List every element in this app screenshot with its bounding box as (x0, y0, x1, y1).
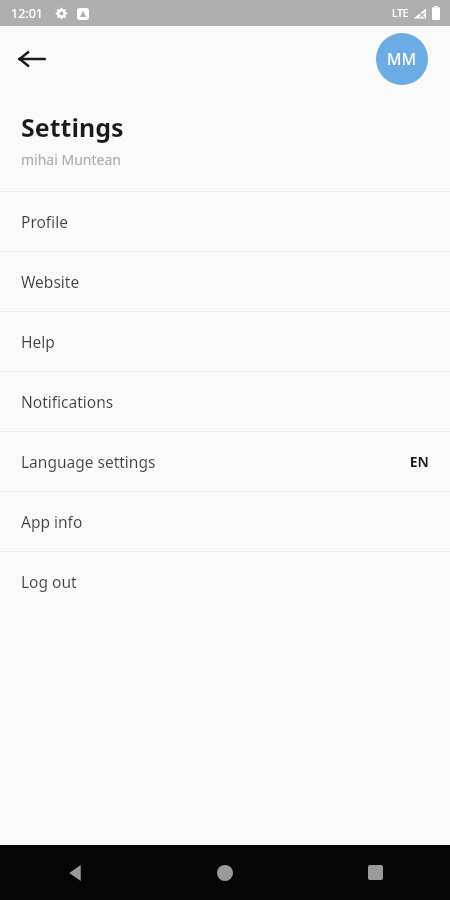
staticText: 12:01 (11, 5, 43, 22)
button[interactable]: Profile (0, 192, 450, 251)
button[interactable]: Back (8, 35, 56, 83)
button[interactable]: Profile avatar (376, 33, 428, 85)
button[interactable]: Back (0, 845, 150, 900)
staticText: mihai Muntean (21, 150, 121, 169)
staticText: Language settings (21, 451, 409, 472)
staticText: Help (21, 331, 429, 352)
button[interactable]: Notifications (0, 372, 450, 431)
staticText: App info (21, 511, 429, 532)
button[interactable]: App info (0, 492, 450, 551)
staticText: Profile (21, 211, 429, 232)
staticText: Website (21, 271, 429, 292)
button[interactable]: Website (0, 252, 450, 311)
staticText: LTE (392, 6, 409, 20)
staticText: MM (387, 48, 417, 70)
button[interactable]: Language settings (0, 432, 450, 491)
staticText: Log out (21, 571, 429, 592)
staticText: EN (409, 452, 429, 471)
button[interactable]: Recent apps (300, 845, 450, 900)
button[interactable]: Help (0, 312, 450, 371)
button[interactable]: Home (150, 845, 300, 900)
button[interactable]: Log out (0, 552, 450, 611)
staticText: Settings (21, 110, 124, 144)
staticText: Notifications (21, 391, 429, 412)
